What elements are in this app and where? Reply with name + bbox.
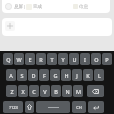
staticText: F — [43, 72, 46, 79]
button[interactable]: Y — [58, 53, 68, 65]
staticText: 完成 — [33, 4, 42, 10]
staticText: N — [65, 88, 70, 95]
button[interactable]: Shift — [25, 101, 34, 113]
button[interactable]: Add attachment — [5, 21, 15, 31]
button[interactable]: E — [25, 53, 35, 65]
button[interactable]: I — [80, 53, 90, 65]
staticText: K — [86, 72, 90, 79]
staticText: Y — [61, 56, 65, 63]
button[interactable]: U — [69, 53, 79, 65]
button[interactable]: R — [36, 53, 46, 65]
staticText: P — [105, 56, 109, 63]
staticText: W — [16, 56, 22, 63]
staticText: H — [64, 72, 69, 79]
staticText: Z — [10, 88, 14, 95]
button[interactable]: W — [14, 53, 24, 65]
staticText: 信息 — [79, 4, 88, 10]
button[interactable]: V — [40, 85, 50, 97]
staticText: I — [84, 56, 86, 63]
staticText: E — [28, 56, 32, 63]
button[interactable]: O — [91, 53, 101, 65]
button[interactable]: J — [72, 69, 82, 81]
staticText: A — [9, 72, 13, 79]
button[interactable]: D — [28, 69, 38, 81]
staticText: D — [31, 72, 36, 79]
button[interactable]: H — [61, 69, 71, 81]
button[interactable]: CH — [72, 101, 86, 113]
button[interactable]: B — [51, 85, 61, 97]
button[interactable]: A — [6, 69, 16, 81]
button[interactable]: Backspace — [87, 85, 104, 97]
button[interactable]: 息屏 — [2, 0, 110, 13]
staticText: L — [98, 72, 101, 79]
button[interactable]: C — [29, 85, 39, 97]
button[interactable]: K — [83, 69, 93, 81]
button[interactable]: G — [50, 69, 60, 81]
staticText: S — [20, 72, 24, 79]
button[interactable]: P — [102, 53, 112, 65]
button[interactable]: M — [73, 85, 83, 97]
staticText: B — [54, 88, 58, 95]
staticText: X — [21, 88, 25, 95]
staticText: T — [50, 56, 54, 63]
staticText: R — [39, 56, 43, 63]
button[interactable]: S — [17, 69, 27, 81]
button[interactable]: Enter — [88, 101, 104, 113]
staticText: V — [43, 88, 47, 95]
button[interactable]: N — [62, 85, 72, 97]
staticText: U — [72, 56, 77, 63]
button[interactable]: L — [94, 69, 104, 81]
button[interactable]: T — [47, 53, 57, 65]
button[interactable]: X — [18, 85, 28, 97]
staticText: J — [76, 72, 78, 79]
staticText: G — [53, 72, 58, 79]
staticText: Q — [6, 56, 11, 63]
button[interactable]: Z — [6, 85, 17, 97]
staticText: CH — [76, 105, 82, 110]
staticText: C — [32, 88, 36, 95]
staticText: O — [94, 56, 99, 63]
button[interactable]: Space — [36, 101, 70, 113]
staticText: 息屏 — [14, 4, 23, 10]
button[interactable]: F — [39, 69, 49, 81]
button[interactable]: Q — [3, 53, 13, 65]
staticText: ?123 — [9, 105, 18, 110]
button[interactable]: ?123 — [3, 101, 23, 113]
staticText: M — [76, 88, 81, 95]
